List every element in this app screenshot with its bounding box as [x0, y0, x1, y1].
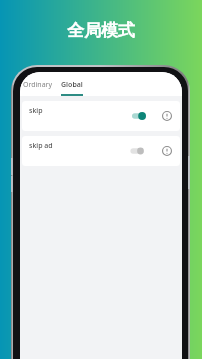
staticText: Global — [61, 80, 83, 90]
staticText: skip — [29, 106, 43, 116]
button[interactable]: Switch off — [132, 146, 146, 156]
button[interactable]: Ordinary — [24, 72, 51, 96]
button[interactable]: skip — [22, 101, 180, 131]
button[interactable]: Switch on — [132, 111, 146, 121]
staticText: Ordinary — [23, 80, 53, 90]
button[interactable]: Global — [61, 72, 83, 96]
staticText: skip ad — [29, 141, 53, 151]
button[interactable]: skip ad — [22, 136, 180, 166]
staticText: 全局模式 — [67, 20, 135, 41]
button[interactable]: Info — [162, 111, 172, 121]
button[interactable]: Info — [162, 146, 172, 156]
